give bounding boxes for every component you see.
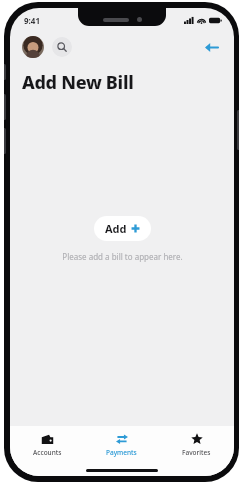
button[interactable]: Profile: [22, 36, 44, 58]
button[interactable]: Back: [200, 36, 222, 58]
staticText: 9:41: [24, 15, 40, 26]
button[interactable]: Search: [52, 37, 72, 57]
button[interactable]: Add: [94, 216, 151, 241]
staticText: Add New Bill: [22, 70, 134, 95]
button[interactable]: Payments: [84, 426, 159, 464]
staticText: Please add a bill to appear here.: [62, 251, 183, 262]
staticText: Payments: [106, 448, 137, 457]
staticText: Add: [105, 221, 127, 236]
button[interactable]: Accounts: [10, 426, 84, 464]
staticText: Accounts: [33, 448, 62, 457]
staticText: Favorites: [182, 448, 211, 457]
button[interactable]: Favorites: [159, 426, 234, 464]
